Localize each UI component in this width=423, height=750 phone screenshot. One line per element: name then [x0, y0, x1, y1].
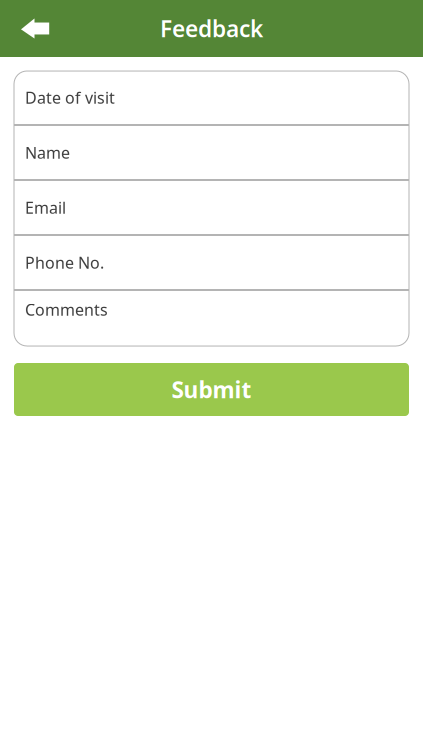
staticText: Phone No.	[25, 252, 104, 273]
staticText: Feedback	[160, 13, 263, 43]
staticText: Submit	[171, 374, 251, 404]
staticText: Email	[25, 197, 66, 218]
staticText: Name	[25, 142, 70, 163]
button[interactable]: Name	[14, 126, 409, 181]
button[interactable]: Date of visit	[14, 71, 409, 126]
button[interactable]: Comments	[14, 291, 409, 346]
button[interactable]: Submit	[14, 363, 409, 416]
button[interactable]: Email	[14, 181, 409, 236]
button[interactable]: Back	[0, 0, 63, 57]
staticText: Comments	[25, 299, 108, 320]
button[interactable]: Phone No.	[14, 236, 409, 291]
staticText: Date of visit	[25, 87, 115, 108]
